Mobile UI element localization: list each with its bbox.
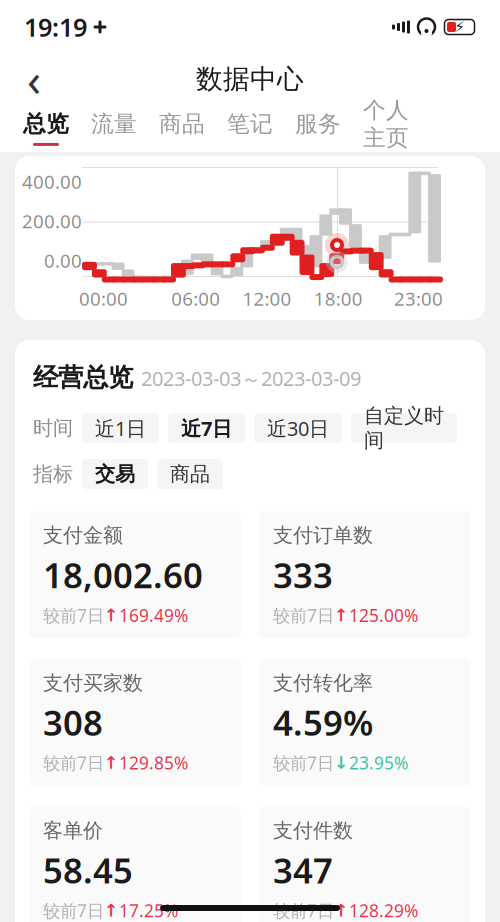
button[interactable]: 支付订单数 <box>259 511 471 639</box>
staticText: 服务 <box>295 110 341 138</box>
button[interactable]: Back <box>12 57 56 101</box>
staticText: 较前7日 <box>273 604 334 627</box>
staticText: 23.95% <box>349 751 408 774</box>
staticText: ‹ <box>27 49 41 109</box>
staticText: 2023-03-03～2023-03-09 <box>141 365 361 392</box>
staticText: 数据中心 <box>196 63 304 95</box>
button[interactable]: 近7日 <box>168 413 245 443</box>
staticText: 近30日 <box>267 415 329 441</box>
staticText: 308 <box>43 699 103 745</box>
staticText: ↑ <box>104 753 119 773</box>
button[interactable]: 客单价 <box>29 806 241 922</box>
staticText: 23:00 <box>394 286 443 311</box>
staticText: ↓ <box>334 753 349 773</box>
staticText: 12:00 <box>242 286 291 311</box>
staticText: 4.59% <box>273 699 373 745</box>
staticText: 客单价 <box>43 818 103 843</box>
staticText: 00:00 <box>79 286 128 311</box>
button[interactable]: 支付转化率 <box>259 659 471 786</box>
button[interactable]: 支付买家数 <box>29 659 241 786</box>
button[interactable]: 笔记 <box>216 105 284 151</box>
staticText: 169.49% <box>119 604 188 627</box>
staticText: 18,002.60 <box>43 552 203 598</box>
staticText: 时间 <box>33 416 73 440</box>
staticText: 支付订单数 <box>273 523 373 548</box>
staticText: ↑ <box>104 605 119 625</box>
staticText: 125.00% <box>349 604 418 627</box>
staticText: 支付转化率 <box>273 671 373 695</box>
staticText: 0.00 <box>44 248 82 273</box>
staticText: 支付件数 <box>273 818 353 843</box>
staticText: 347 <box>273 847 333 893</box>
staticText: 经营总览 <box>33 362 133 393</box>
staticText: 333 <box>273 552 333 598</box>
staticText: 17.25% <box>119 899 178 922</box>
button[interactable]: 总览 <box>12 105 80 151</box>
button[interactable]: 自定义时间 <box>351 413 457 443</box>
staticText: ↑ <box>334 901 349 920</box>
staticText: 200.00 <box>22 209 82 233</box>
staticText: 近1日 <box>95 415 146 441</box>
button[interactable]: 商品 <box>148 105 216 151</box>
staticText: 支付金额 <box>43 523 123 548</box>
staticText: 总览 <box>23 110 69 138</box>
button[interactable]: 交易 <box>82 459 148 489</box>
button[interactable]: 近1日 <box>82 413 159 443</box>
staticText: 笔记 <box>227 110 273 138</box>
staticText: 较前7日 <box>273 899 334 922</box>
staticText: 近7日 <box>181 415 232 441</box>
staticText: 较前7日 <box>273 751 334 774</box>
staticText: 58.45 <box>43 847 133 893</box>
staticText: 商品 <box>159 110 205 138</box>
button[interactable]: 商品 <box>157 459 223 489</box>
staticText: ↑ <box>334 605 349 625</box>
staticText: 支付买家数 <box>43 671 143 695</box>
button[interactable]: 近30日 <box>254 413 342 443</box>
button[interactable]: 支付金额 <box>29 511 241 639</box>
staticText: 较前7日 <box>43 751 104 774</box>
staticText: 06:00 <box>171 286 220 311</box>
button[interactable]: 支付件数 <box>259 806 471 922</box>
staticText: 交易 <box>95 462 135 486</box>
staticText: 个人主页 <box>363 96 409 152</box>
button[interactable]: 流量 <box>80 105 148 151</box>
staticText: 较前7日 <box>43 899 104 922</box>
button[interactable]: 个人主页 <box>352 105 420 151</box>
staticText: ↑ <box>104 901 119 920</box>
staticText: 指标 <box>33 462 73 486</box>
staticText: 19:19 <box>24 10 87 44</box>
staticText: 商品 <box>170 462 210 486</box>
staticText: 自定义时间 <box>364 404 444 453</box>
staticText: 较前7日 <box>43 604 104 627</box>
button[interactable]: 服务 <box>284 105 352 151</box>
staticText: 18:00 <box>314 286 363 311</box>
staticText: 128.29% <box>349 899 418 922</box>
staticText: 400.00 <box>22 169 82 194</box>
staticText: ⚡︎ <box>454 19 464 35</box>
staticText: 129.85% <box>119 751 188 774</box>
staticText: 流量 <box>91 110 137 138</box>
